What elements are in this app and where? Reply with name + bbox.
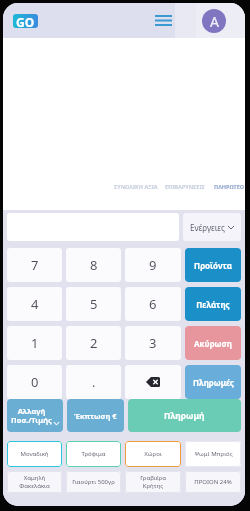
button[interactable]: Χαμηλή Φακελάκια [7,471,62,493]
button[interactable]: 6 [125,287,181,321]
staticText: 2 [90,334,98,352]
staticText: Πληρωμή [164,410,205,422]
staticText: Αλλαγή Ποσ./Τιμής [11,406,52,425]
staticText: 9 [149,256,157,274]
button[interactable]: Τρόφιμα [66,441,121,467]
button[interactable]: 4 [7,287,62,321]
staticText: A [210,12,219,31]
staticText: ΠΛΗΡΩΤΕΟ [214,183,245,190]
button[interactable]: Μοναδική [7,441,62,467]
button[interactable]: 0 [7,365,62,399]
staticText: Πελάτης [196,299,230,310]
button[interactable]: 7 [7,248,62,282]
staticText: ΠΡΟΙΟΝ 24% [194,478,232,486]
staticText: Προϊόντα [194,260,232,271]
button[interactable]: Πληρωμές [185,365,241,399]
button[interactable]: Πελάτης [185,287,241,321]
button[interactable]: Πληρωμή [128,399,241,432]
staticText: Μοναδική [20,450,49,458]
staticText: Έκπτωση € [74,411,117,421]
staticText: 4 [31,295,39,313]
button[interactable]: Ακύρωση [185,326,241,360]
staticText: Ενέργειες [190,222,225,233]
staticText: 5 [90,295,98,313]
staticText: ΣΥΝΟΛΙΚΗ ΑΞΙΑ [114,183,158,190]
staticText: 0 [31,373,39,391]
button[interactable]: 5 [66,287,121,321]
button[interactable]: 8 [66,248,121,282]
button[interactable]: Γραβιέρα Κρήτης [125,471,181,493]
staticText: Γιαούρτι 500γρ [72,478,115,486]
button[interactable]: 3 [125,326,181,360]
button[interactable]: Ενέργειες [183,213,241,241]
staticText: ΕΠΙΒΑΡΥΝΣΕΙΣ [165,183,205,190]
staticText: 8 [90,256,98,274]
button[interactable]: Γιαούρτι 500γρ [66,471,121,493]
button[interactable]: Αλλαγή Ποσ./Τιμής [7,399,63,432]
button[interactable]: 9 [125,248,181,282]
staticText: 6 [149,295,157,313]
staticText: 7 [31,256,39,274]
staticText: Ακύρωση [194,338,232,349]
staticText: Ψωμί Μπριός [194,450,233,458]
button[interactable]: Menu [149,3,177,38]
staticText: GO [16,14,35,28]
button[interactable]: GO [13,14,38,28]
button[interactable]: . [66,365,121,399]
button[interactable]: Χώροι [125,441,181,467]
staticText: Χώροι [144,450,162,458]
staticText: 3 [149,334,157,352]
button[interactable]: ΠΡΟΙΟΝ 24% [185,471,241,493]
button[interactable]: 2 [66,326,121,360]
staticText: Πληρωμές [193,377,234,388]
button[interactable]: Account [196,3,245,38]
button[interactable]: Προϊόντα [185,248,241,282]
button[interactable]: Backspace [125,365,181,399]
button[interactable]: Έκπτωση € [67,399,124,432]
staticText: Τρόφιμα [81,450,106,458]
button[interactable]: Ψωμί Μπριός [185,441,241,467]
staticText: . [92,373,96,391]
staticText: 1 [31,334,39,352]
button[interactable]: 1 [7,326,62,360]
staticText: Γραβιέρα Κρήτης [140,474,166,490]
staticText: Χαμηλή Φακελάκια [19,474,50,490]
